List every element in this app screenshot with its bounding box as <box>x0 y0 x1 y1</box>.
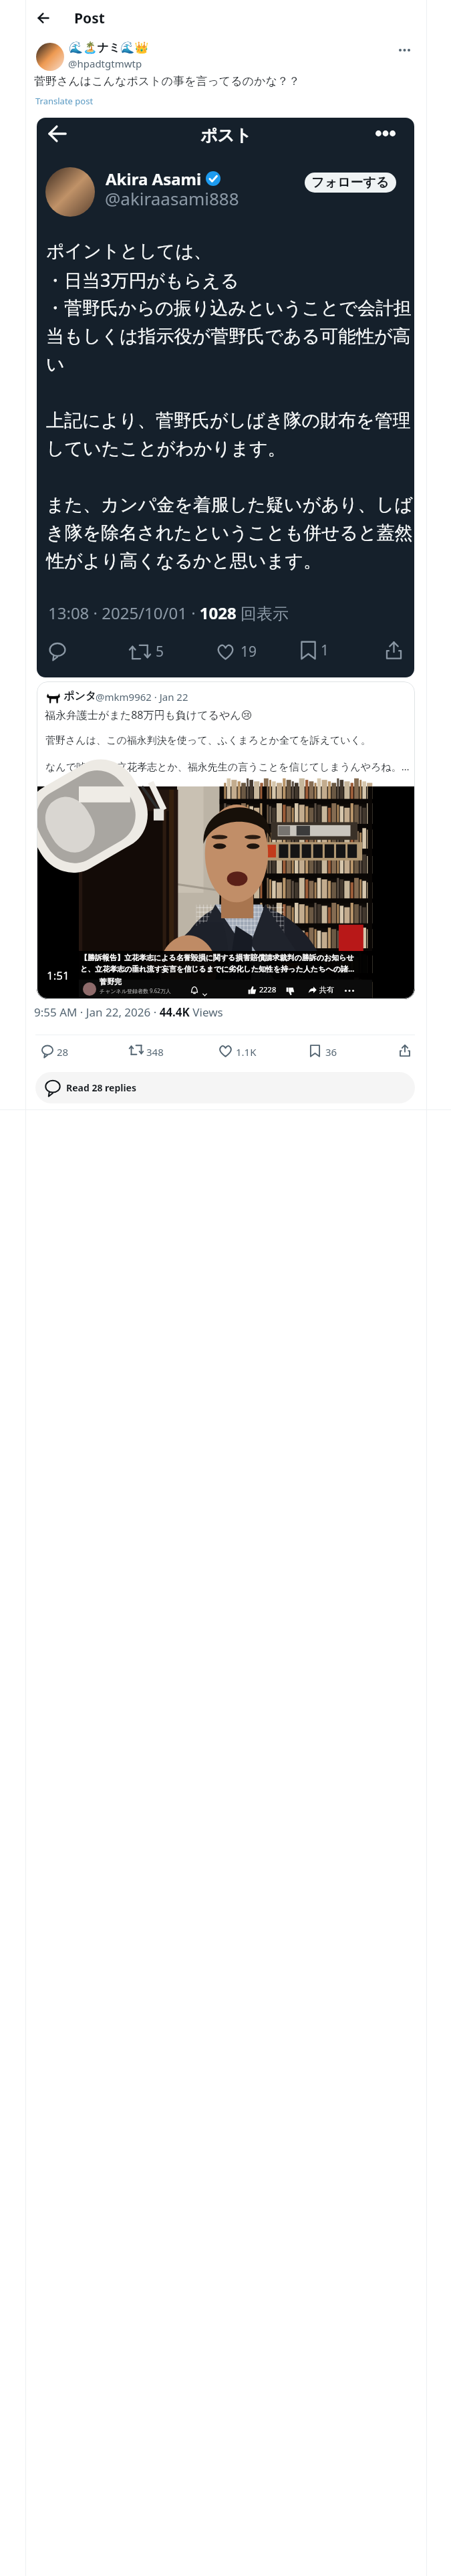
button[interactable]: Repost <box>129 642 164 661</box>
button[interactable]: More <box>369 120 402 146</box>
staticText: @akiraasami888 <box>105 187 239 210</box>
button[interactable]: Translate post <box>35 95 94 107</box>
staticText: 菅野さんはこんなポストの事を言ってるのかな？？ <box>34 74 419 88</box>
button[interactable]: ポンタ <box>37 681 415 999</box>
staticText: ポイントとしては、 ・日当3万円がもらえる ・菅野氏からの振り込みということで会… <box>46 240 414 572</box>
staticText: 菅野さんは、この福永判決を使って、ふくまろとか全てを訴えていく。 <box>45 734 371 747</box>
staticText: 福永弁護士がまた88万円も負けてるやん😢 <box>45 708 253 722</box>
button[interactable]: Share <box>381 637 406 663</box>
staticText: Akira Asami <box>106 168 202 190</box>
staticText: 1.1K <box>236 1045 257 1059</box>
button[interactable]: Like <box>218 1045 233 1057</box>
staticText: Translate post <box>35 95 94 107</box>
staticText: 9:55 AM · Jan 22, 2026 · 44.4K Views <box>34 1004 223 1020</box>
staticText: なんで嘘つきの立花孝志とか、福永先生の言うことを信じてしまうんやろね。… <box>45 760 410 773</box>
staticText: フォローする <box>311 175 390 191</box>
button[interactable]: Repost <box>129 1045 144 1055</box>
staticText: チャンネル登録者数 9.62万人 <box>100 987 171 994</box>
button[interactable]: Share <box>393 1039 416 1062</box>
staticText: 【勝訴報告】立花孝志による名誉毀損に関する損害賠償請求裁判の勝訴のお知らせ と、… <box>80 953 371 974</box>
staticText: Read 28 replies <box>66 1081 136 1094</box>
button[interactable]: Read 28 replies <box>35 1072 415 1103</box>
staticText: 1 <box>321 641 329 660</box>
staticText: ポスト <box>200 125 252 146</box>
staticText: @mkm9962 · Jan 22 <box>96 690 188 704</box>
staticText: 13:08 · 2025/10/01 · 1028 回表示 <box>48 602 289 624</box>
staticText: 19 <box>241 642 257 661</box>
staticText: ポンタ <box>63 689 97 703</box>
button[interactable]: Bookmark <box>301 641 329 660</box>
button[interactable]: Bookmark <box>310 1045 320 1057</box>
staticText: Post <box>74 9 105 28</box>
button[interactable]: Like <box>216 642 257 661</box>
button[interactable]: Back <box>31 6 55 30</box>
staticText: 共有 <box>319 985 334 994</box>
button[interactable]: Back <box>45 121 70 146</box>
button[interactable]: フォローする <box>305 173 396 193</box>
button[interactable]: Reply <box>35 1039 59 1063</box>
staticText: 2228 <box>259 984 277 994</box>
staticText: 348 <box>146 1045 164 1059</box>
staticText: @hpadtgtmwtp <box>68 57 142 70</box>
staticText: 36 <box>325 1045 337 1059</box>
staticText: 菅野完 <box>100 977 122 986</box>
staticText: 5 <box>156 642 164 661</box>
button[interactable]: More <box>393 39 416 62</box>
staticText: 1:51 <box>47 968 69 983</box>
button[interactable]: Profile photo <box>45 167 95 217</box>
staticText: 🌊🏝️ナミ🌊👑 <box>69 41 149 55</box>
button[interactable]: Profile photo <box>36 43 64 71</box>
button[interactable]: Reply <box>43 637 71 665</box>
staticText: 28 <box>57 1045 69 1059</box>
